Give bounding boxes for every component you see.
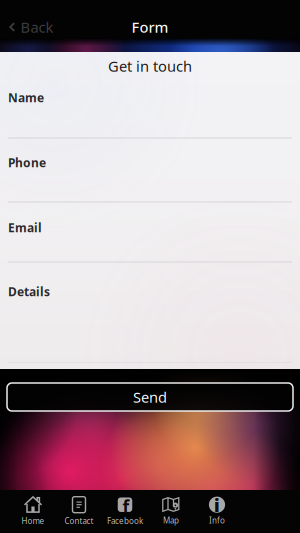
staticText: Home — [21, 516, 44, 526]
button[interactable]: Home — [10, 492, 56, 529]
staticText: Info — [209, 515, 225, 526]
staticText: Form — [131, 17, 168, 37]
button[interactable]: Send — [7, 383, 293, 411]
button[interactable]: i — [194, 492, 240, 529]
staticText: Back — [20, 17, 53, 37]
staticText: Email — [8, 219, 42, 235]
staticText: i — [214, 494, 220, 517]
button[interactable]: Map — [148, 492, 194, 529]
staticText: Map — [163, 515, 179, 526]
staticText: Get in touch — [108, 56, 192, 76]
staticText: Send — [133, 387, 167, 407]
staticText: Phone — [8, 154, 46, 170]
staticText: Contact — [64, 516, 93, 526]
staticText: Details — [8, 283, 50, 299]
button[interactable]: f — [102, 492, 148, 529]
staticText: f — [122, 495, 129, 518]
staticText: Name — [8, 89, 44, 105]
button[interactable]: Contact — [56, 492, 102, 529]
staticText: Facebook — [107, 516, 143, 526]
button[interactable]: Back — [0, 17, 53, 37]
